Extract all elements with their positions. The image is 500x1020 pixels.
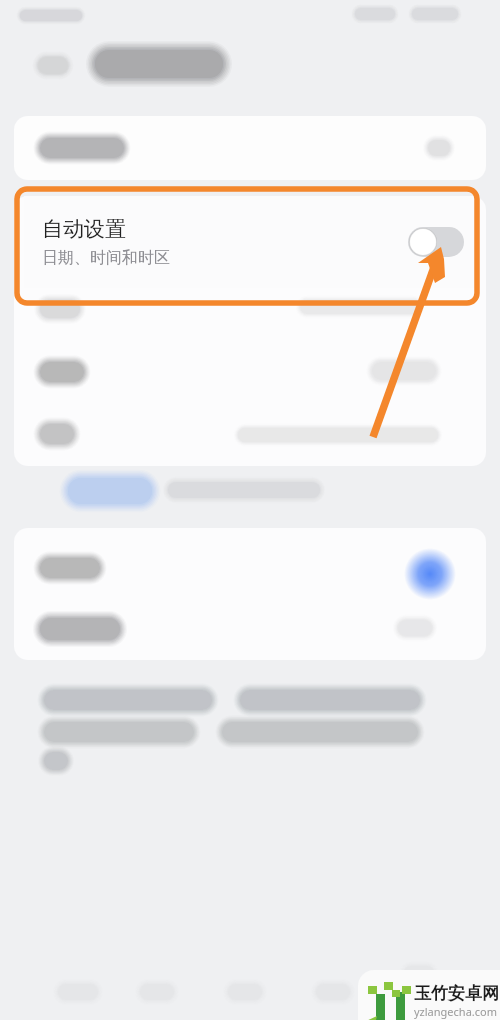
button[interactable]: 自动设置	[24, 196, 480, 288]
staticText: 日期、时间和时区	[42, 248, 170, 268]
button[interactable]: 自动设置开关	[408, 227, 464, 257]
staticText: 自动设置	[42, 216, 126, 242]
button[interactable]	[14, 116, 486, 180]
staticText: yzlangecha.com	[414, 1004, 497, 1019]
staticText: 玉竹安卓网	[414, 983, 499, 1004]
